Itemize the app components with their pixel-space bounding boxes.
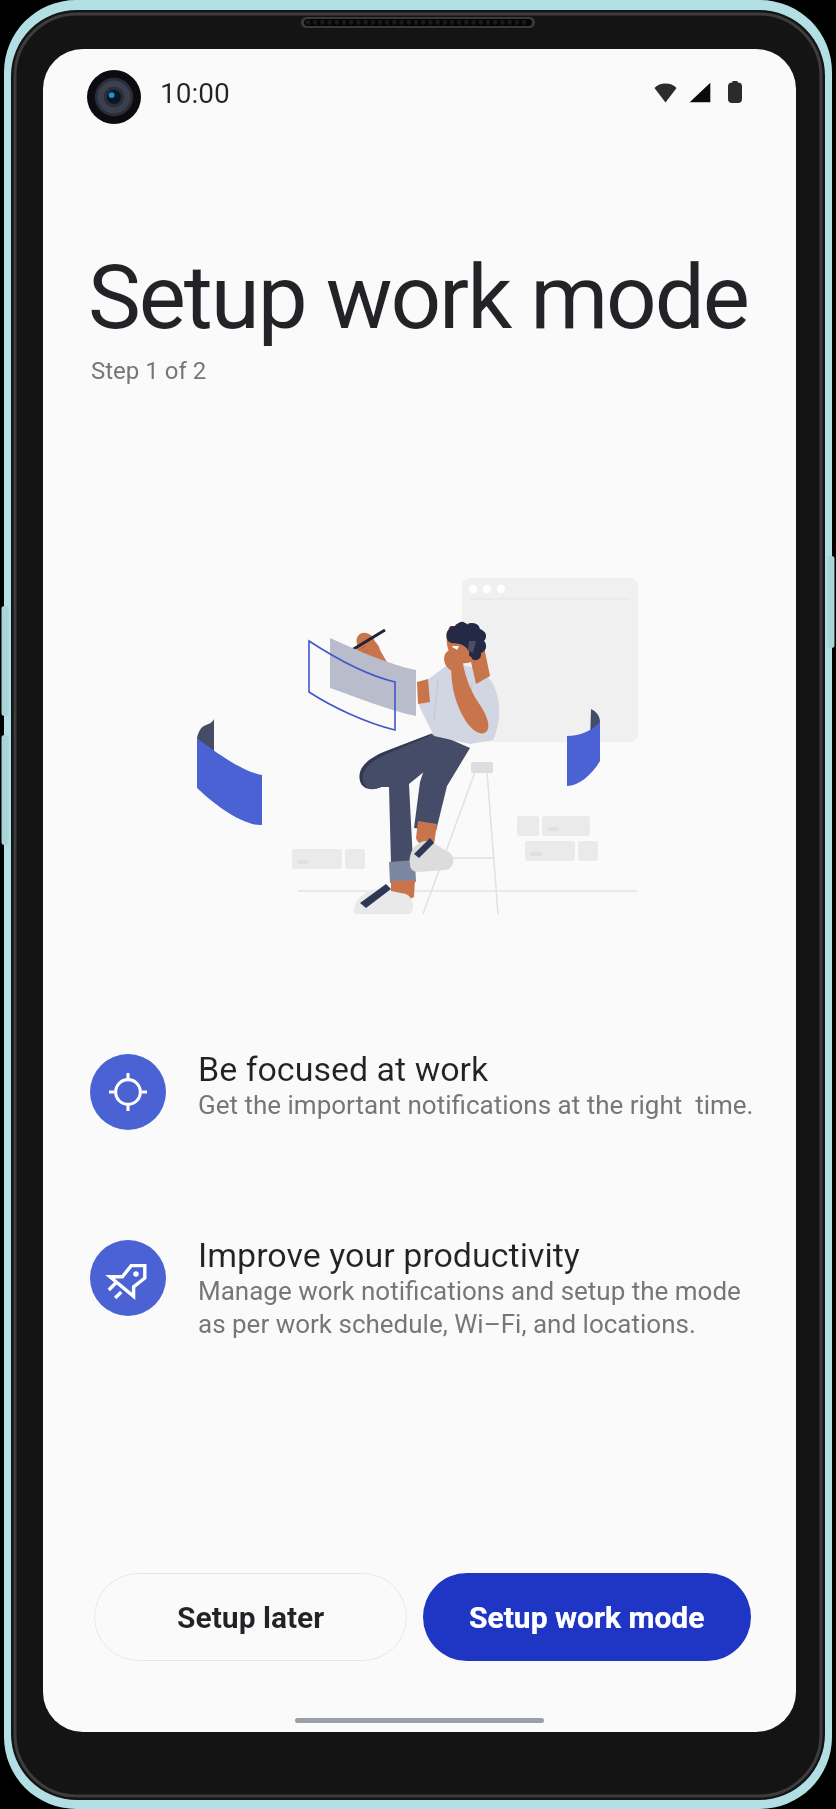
button[interactable]: Setup later — [94, 1573, 407, 1661]
staticText: Manage work notifications and setup the … — [198, 1276, 741, 1339]
other: Productivity — [90, 1240, 166, 1316]
staticText: 10:00 — [160, 77, 230, 110]
staticText: Be focused at work — [198, 1049, 489, 1089]
staticText: Setup later — [177, 1600, 325, 1635]
staticText: Setup work mode — [88, 245, 748, 349]
staticText: Improve your productivity — [198, 1235, 580, 1275]
staticText: Get the important notifications at the r… — [198, 1090, 754, 1120]
staticText: Setup work mode — [469, 1600, 705, 1635]
other: Focus — [90, 1054, 166, 1130]
staticText: Step 1 of 2 — [91, 357, 207, 385]
button[interactable]: Setup work mode — [423, 1573, 751, 1661]
